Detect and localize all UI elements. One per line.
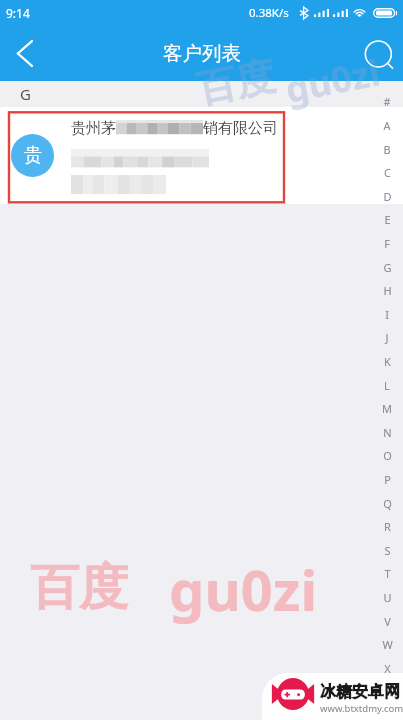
button[interactable]: A bbox=[374, 113, 400, 137]
button[interactable]: M bbox=[374, 396, 400, 420]
button[interactable]: G bbox=[374, 255, 400, 279]
staticText: 0.38K/s bbox=[249, 5, 289, 21]
staticText: Y bbox=[384, 684, 391, 699]
staticText: A bbox=[383, 118, 391, 133]
staticText: F bbox=[384, 236, 390, 251]
staticText: # bbox=[383, 94, 391, 109]
button[interactable]: 冰糖安卓网 bbox=[262, 673, 403, 720]
staticText: T bbox=[384, 566, 391, 581]
staticText: M bbox=[382, 401, 392, 416]
staticText: 冰糖安卓网 bbox=[320, 682, 400, 702]
button[interactable]: Z bbox=[374, 703, 400, 720]
staticText: U bbox=[383, 590, 392, 605]
staticText: R bbox=[384, 519, 391, 534]
staticText: gu0zi bbox=[281, 47, 385, 114]
staticText: gu0zi bbox=[169, 551, 318, 627]
staticText: W bbox=[382, 637, 393, 652]
staticText: G bbox=[20, 84, 31, 104]
staticText: 贵 bbox=[24, 144, 42, 167]
staticText: 9:14 bbox=[6, 5, 30, 21]
button[interactable]: D bbox=[374, 184, 400, 208]
staticText: 百度 bbox=[193, 51, 279, 114]
staticText: O bbox=[383, 448, 392, 463]
button[interactable]: W bbox=[374, 632, 400, 656]
button[interactable]: # bbox=[374, 89, 400, 113]
staticText: S bbox=[384, 543, 391, 558]
staticText: B bbox=[383, 142, 391, 157]
staticText: 客户列表 bbox=[163, 41, 241, 66]
staticText: N bbox=[383, 425, 392, 440]
staticText: I bbox=[385, 307, 389, 322]
button[interactable]: U bbox=[374, 585, 400, 609]
button[interactable]: K bbox=[374, 349, 400, 373]
button[interactable]: O bbox=[374, 443, 400, 467]
button[interactable]: Y bbox=[374, 679, 400, 703]
button[interactable]: C bbox=[374, 160, 400, 184]
staticText: 销有限公司 bbox=[203, 119, 278, 138]
staticText: www.btxtdmy.com bbox=[320, 702, 403, 715]
staticText: V bbox=[384, 614, 391, 629]
button[interactable]: Back bbox=[0, 25, 53, 81]
button[interactable]: L bbox=[374, 373, 400, 397]
button[interactable]: B bbox=[374, 137, 400, 161]
button[interactable]: N bbox=[374, 420, 400, 444]
button[interactable]: Q bbox=[374, 491, 400, 515]
button[interactable]: F bbox=[374, 231, 400, 255]
button[interactable]: 贵 bbox=[0, 107, 403, 204]
staticText: Q bbox=[383, 496, 392, 511]
button[interactable]: P bbox=[374, 467, 400, 491]
staticText: 百度 bbox=[30, 557, 128, 619]
button[interactable]: E bbox=[374, 207, 400, 231]
button[interactable]: Search bbox=[353, 25, 403, 81]
staticText: P bbox=[384, 472, 391, 487]
staticText: X bbox=[384, 661, 391, 676]
button[interactable]: R bbox=[374, 514, 400, 538]
button[interactable]: V bbox=[374, 609, 400, 633]
staticText: Z bbox=[384, 708, 391, 720]
button[interactable]: X bbox=[374, 656, 400, 680]
staticText: L bbox=[384, 378, 390, 393]
button[interactable]: I bbox=[374, 302, 400, 326]
staticText: K bbox=[384, 354, 391, 369]
button[interactable]: S bbox=[374, 538, 400, 562]
staticText: D bbox=[383, 189, 392, 204]
button[interactable]: T bbox=[374, 561, 400, 585]
staticText: 贵州茅 bbox=[71, 119, 116, 138]
staticText: H bbox=[383, 283, 392, 298]
staticText: E bbox=[384, 212, 391, 227]
staticText: G bbox=[383, 260, 392, 275]
button[interactable]: J bbox=[374, 325, 400, 349]
staticText: J bbox=[385, 330, 389, 345]
staticText: C bbox=[384, 165, 391, 180]
button[interactable]: H bbox=[374, 278, 400, 302]
